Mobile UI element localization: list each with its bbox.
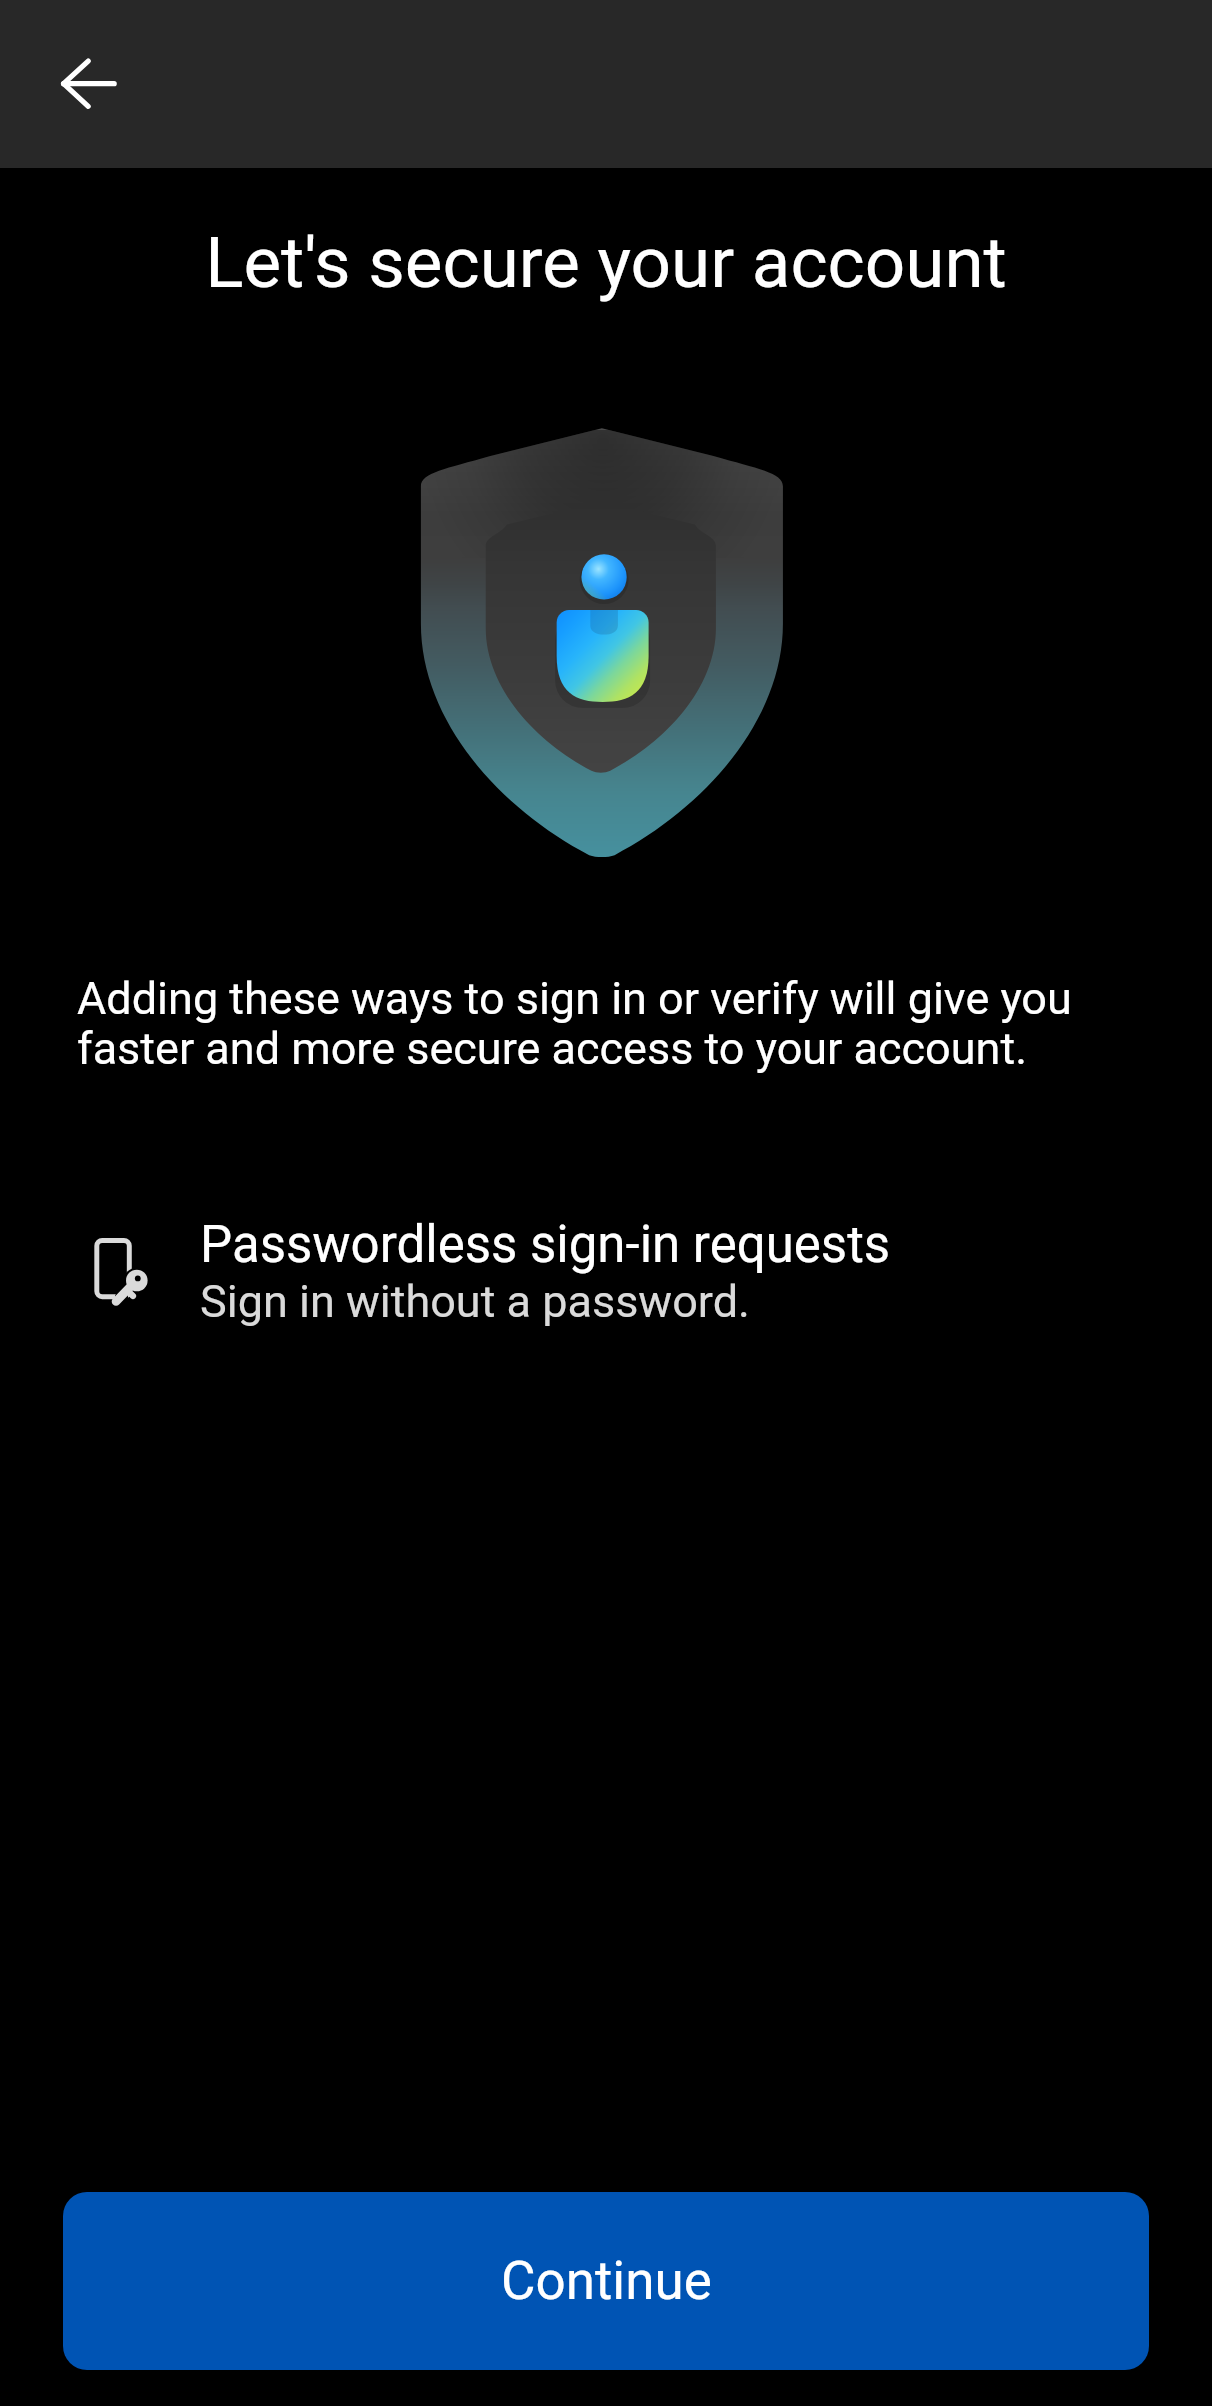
button[interactable]: Continue <box>63 2192 1149 2370</box>
staticText: Continue <box>501 2250 712 2312</box>
staticText: Sign in without a password. <box>200 1275 750 1328</box>
button[interactable]: Passwordless sign-in requests <box>0 1204 1212 1336</box>
button[interactable]: Back <box>27 28 139 140</box>
staticText: Adding these ways to sign in or verify w… <box>77 972 1142 1075</box>
staticText: Passwordless sign-in requests <box>200 1215 891 1275</box>
staticText: Let's secure your account <box>0 221 1212 304</box>
